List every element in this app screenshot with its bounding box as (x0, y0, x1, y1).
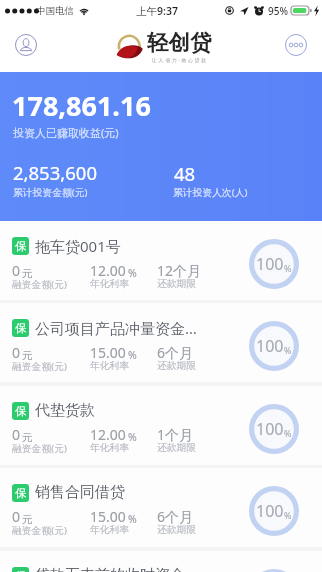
staticText: % (128, 266, 137, 280)
staticText: 6个月 (157, 507, 194, 526)
staticText: 年化利率 (90, 360, 130, 372)
staticText: 95% (268, 4, 288, 18)
staticText: 48 (174, 161, 196, 186)
button[interactable]: 保 (0, 303, 322, 386)
staticText: 12个月 (157, 261, 202, 280)
staticText: 15.00 (90, 507, 126, 526)
staticText: 上午9:37 (136, 4, 178, 18)
staticText: % (284, 262, 292, 274)
staticText: % (284, 509, 292, 521)
staticText: 还款期限 (157, 524, 197, 536)
staticText: % (284, 427, 292, 439)
staticText: 178,861.16 (12, 87, 151, 124)
staticText: 元 (22, 267, 33, 280)
button[interactable]: 个人中心 (12, 31, 40, 59)
staticText: 年化利率 (90, 524, 130, 536)
staticText: 还款期限 (157, 278, 197, 290)
staticText: 元 (22, 513, 33, 526)
staticText: 融资金额(元) (12, 442, 67, 455)
staticText: 元 (22, 349, 33, 362)
staticText: 100 (256, 418, 284, 440)
staticText: 12.00 (90, 261, 126, 280)
staticText: 中国电信 (36, 5, 74, 17)
staticText: 保 (15, 486, 26, 500)
staticText: 2,853,600 (13, 160, 97, 185)
button[interactable]: 保 (0, 386, 322, 469)
staticText: 代垫货款 (35, 401, 95, 420)
staticText: 投资人已赚取收益(元) (13, 125, 119, 140)
staticText: 让人省力·做心贷款 (152, 57, 208, 64)
staticText: 0 (12, 261, 21, 280)
staticText: % (128, 348, 137, 362)
staticText: 年化利率 (90, 442, 130, 454)
staticText: 年化利率 (90, 278, 130, 290)
staticText: 100 (256, 335, 284, 357)
staticText: 贷款五丰前的收时资金 (35, 566, 185, 572)
staticText: 保 (15, 239, 26, 253)
staticText: 融资金额(元) (12, 278, 67, 291)
staticText: 销售合同借贷 (35, 483, 125, 502)
staticText: 融资金额(元) (12, 360, 67, 373)
staticText: 100 (256, 253, 284, 275)
staticText: 0 (12, 343, 21, 362)
staticText: 15.00 (90, 343, 126, 362)
staticText: % (284, 344, 292, 356)
staticText: 累计投资金额(元) (13, 186, 88, 199)
button[interactable]: 保 (0, 221, 322, 304)
staticText: 还款期限 (157, 442, 197, 454)
staticText: 保 (15, 321, 26, 335)
button[interactable]: 保 (0, 551, 322, 572)
staticText: 0 (12, 425, 21, 444)
staticText: 100 (256, 500, 284, 522)
button[interactable]: 保 (0, 468, 322, 551)
button[interactable]: 更多 (282, 31, 310, 59)
staticText: 1个月 (157, 425, 194, 444)
staticText: 拖车贷001号 (35, 236, 121, 256)
staticText: 轻创贷 (147, 29, 212, 56)
staticText: 0 (12, 507, 21, 526)
staticText: % (128, 512, 137, 526)
staticText: 6个月 (157, 343, 194, 362)
staticText: 12.00 (90, 425, 126, 444)
staticText: % (128, 430, 137, 444)
staticText: 累计投资人次(人) (173, 186, 248, 199)
staticText: 融资金额(元) (12, 524, 67, 537)
staticText: 元 (22, 431, 33, 444)
staticText: 还款期限 (157, 360, 197, 372)
staticText: 保 (15, 404, 26, 418)
staticText: 保 (15, 569, 26, 572)
staticText: 公司项目产品冲量资金… (35, 318, 197, 338)
